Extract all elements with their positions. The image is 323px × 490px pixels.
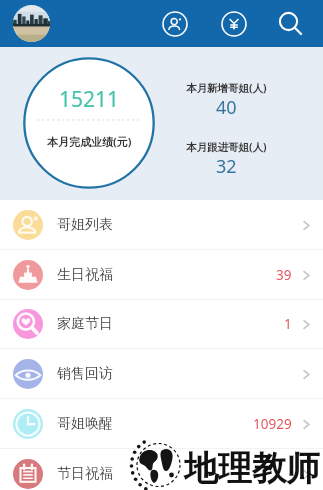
staticText: 节日祝福 (57, 465, 113, 483)
staticText: 家庭节日 (57, 315, 113, 333)
staticText: 哥姐唤醒 (57, 415, 113, 433)
staticText: 本月完成业绩(元) (47, 134, 132, 149)
staticText: 32 (216, 154, 237, 179)
staticText: 1 (284, 315, 292, 333)
button[interactable]: 哥姐列表 (0, 200, 323, 250)
button[interactable]: Contacts (159, 8, 191, 40)
button[interactable]: Profile (13, 5, 50, 42)
staticText: 哥姐列表 (57, 216, 113, 234)
button[interactable]: Money (218, 8, 250, 40)
button[interactable]: 销售回访 (0, 349, 323, 399)
button[interactable]: 哥姐唤醒 (0, 399, 323, 449)
button[interactable]: 家庭节日 (0, 299, 323, 349)
staticText: 10929 (253, 415, 292, 433)
button[interactable]: 生日祝福 (0, 250, 323, 300)
staticText: 40 (216, 95, 237, 120)
button[interactable]: Search (274, 8, 306, 40)
staticText: 15211 (59, 85, 120, 114)
staticText: 生日祝福 (57, 266, 113, 284)
staticText: 本月跟进哥姐(人) (186, 140, 267, 154)
staticText: 39 (276, 266, 292, 284)
button[interactable]: 节日祝福 (0, 449, 323, 490)
staticText: 本月新增哥姐(人) (186, 81, 267, 95)
staticText: 地理教师 (184, 447, 320, 490)
staticText: 销售回访 (57, 365, 113, 383)
